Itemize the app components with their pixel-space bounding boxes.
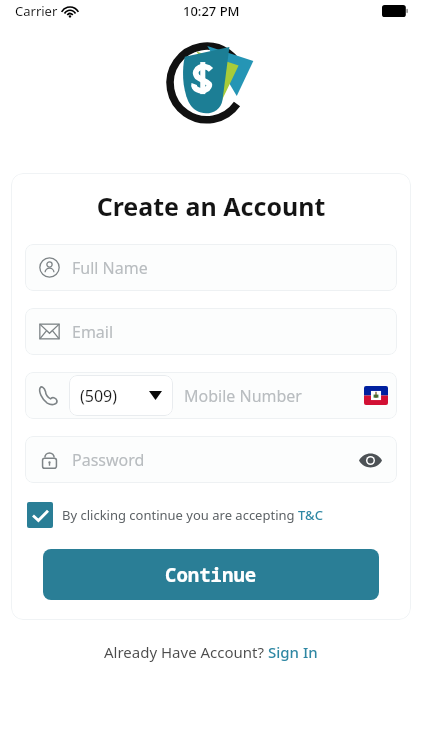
staticText: 10:27 PM [183,2,240,20]
staticText: By clicking continue you are accepting [62,506,298,524]
other: Accept terms checkbox [27,502,53,528]
staticText: Email [72,321,114,343]
staticText: Password [72,449,357,471]
staticText: Already Have Account? [104,642,268,662]
button[interactable]: Sign In [268,642,318,662]
button[interactable]: Password [25,436,397,483]
button[interactable]: Continue [43,549,379,600]
staticText: Carrier [15,2,58,20]
button[interactable]: Show password [357,447,383,473]
staticText: Continue [165,562,257,588]
staticText: Mobile Number [184,385,364,407]
button[interactable]: (509) [69,375,173,416]
button[interactable]: Accept terms checkbox [25,500,397,530]
button[interactable]: Email [25,308,397,355]
staticText: Create an Account [25,189,397,223]
button[interactable]: T&C [298,506,323,524]
staticText: Full Name [72,257,148,279]
staticText: (509) [80,385,118,407]
button[interactable]: Full Name [25,244,397,291]
